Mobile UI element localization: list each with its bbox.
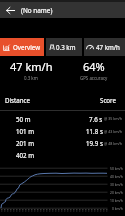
staticText: @ 48 km/h: [104, 141, 123, 146]
button[interactable]: 201 m: [0, 137, 125, 149]
staticText: 64%: [83, 59, 105, 74]
staticText: Overview: [13, 43, 40, 51]
staticText: 101 m: [16, 127, 35, 135]
staticText: 0.3 km: [56, 43, 76, 51]
staticText: 7.6 s: [89, 115, 103, 123]
staticText: 40 km/h: [110, 174, 123, 178]
button[interactable]: Back: [0, 2, 21, 18]
staticText: 50 km/h: [110, 166, 123, 170]
staticText: 50 m: [16, 115, 31, 123]
button[interactable]: 402 m: [0, 149, 125, 161]
staticText: Distance: [5, 96, 31, 104]
staticText: 20 km/h: [110, 190, 123, 194]
staticText: 402 m: [16, 151, 35, 159]
staticText: 10 km/h: [110, 198, 123, 202]
staticText: GPS accuracy: [80, 75, 108, 81]
staticText: @ 43 km/h: [104, 129, 123, 134]
button[interactable]: Overview: [0, 38, 44, 56]
staticText: 11.8 s: [86, 127, 103, 135]
staticText: 19.9 s: [86, 139, 103, 147]
staticText: 0.3 km: [24, 75, 38, 81]
button[interactable]: 101 m: [0, 125, 125, 137]
staticText: (No name): [21, 6, 53, 15]
button[interactable]: 50 m: [0, 112, 125, 125]
button[interactable]: 47 km/h: [84, 38, 125, 56]
staticText: 201 m: [16, 139, 35, 147]
staticText: Score: [100, 96, 117, 104]
staticText: @ 35 km/h: [104, 116, 123, 121]
button[interactable]: 0.3 km: [46, 38, 82, 56]
staticText: 47 km/h: [10, 59, 53, 74]
staticText: 47 km/h: [96, 43, 120, 51]
staticText: 30 km/h: [110, 182, 123, 186]
staticText: 0 km/h: [112, 206, 123, 210]
